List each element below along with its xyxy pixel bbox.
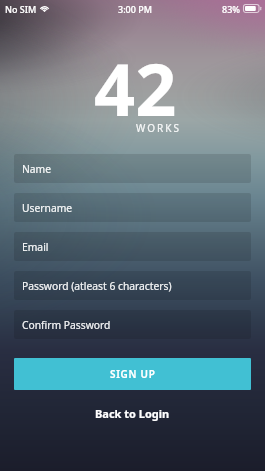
staticText: Name (22, 162, 52, 176)
staticText: 3:00 PM (118, 3, 152, 15)
staticText: 42 (94, 39, 177, 137)
staticText: WORKS (136, 121, 181, 135)
button[interactable]: Username (14, 193, 251, 222)
staticText: Password (atleast 6 characters) (22, 279, 172, 293)
staticText: No SIM (5, 3, 37, 15)
button[interactable]: SIGN UP (14, 358, 251, 390)
staticText: Confirm Password (22, 318, 111, 332)
button[interactable]: Back to Login (83, 401, 182, 426)
button[interactable]: Confirm Password (14, 310, 251, 339)
staticText: Email (22, 240, 49, 254)
button[interactable]: Password (atleast 6 characters) (14, 271, 251, 300)
button[interactable]: Name (14, 154, 251, 183)
staticText: Back to Login (95, 406, 170, 421)
staticText: Username (22, 201, 73, 215)
button[interactable]: Email (14, 232, 251, 261)
staticText: 83% (222, 3, 240, 15)
staticText: SIGN UP (110, 367, 156, 381)
